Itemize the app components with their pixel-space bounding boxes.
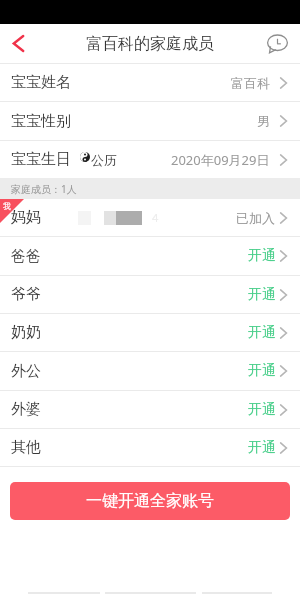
staticText: 一键开通全家账号 [86,491,214,511]
staticText: 开通 [248,324,276,342]
button[interactable]: 宝宝生日 [0,141,300,178]
button[interactable]: History [254,24,300,63]
staticText: 男 [257,113,270,129]
button[interactable]: 宝宝姓名 [0,64,300,101]
button[interactable]: 爷爷 [0,276,300,313]
staticText: 我 [3,201,11,211]
staticText: 妈妈 [11,208,41,227]
button[interactable]: 爸爸 [0,237,300,275]
staticText: 宝宝生日 [11,150,71,169]
staticText: 爸爸 [11,247,41,266]
staticText: 2020年09月29日 [171,151,270,169]
button[interactable]: 奶奶 [0,314,300,351]
button[interactable]: 妈妈 [0,199,300,236]
staticText: 外婆 [11,400,41,419]
staticText: 富百科 [231,75,270,91]
staticText: 开通 [248,439,276,457]
staticText: 开通 [248,401,276,419]
button[interactable]: 其他 [0,429,300,466]
staticText: 开通 [248,362,276,380]
staticText: 宝宝姓名 [11,73,71,92]
staticText: 其他 [11,438,41,457]
staticText: 4 [152,210,159,225]
staticText: 已加入 [236,210,275,226]
staticText: 开通 [248,286,276,304]
button[interactable]: 宝宝性别 [0,102,300,140]
staticText: 外公 [11,362,41,381]
button[interactable]: 一键开通全家账号 [10,482,290,520]
staticText: 富百科的家庭成员 [86,34,214,54]
staticText: 公历 [91,152,117,168]
staticText: 爷爷 [11,285,41,304]
staticText: 开通 [248,247,276,265]
button[interactable]: 外婆 [0,391,300,428]
button[interactable]: 外公 [0,352,300,390]
staticText: 家庭成员：1人 [11,182,77,196]
button[interactable]: Back [0,24,37,63]
staticText: 宝宝性别 [11,112,71,131]
staticText: 奶奶 [11,323,41,342]
